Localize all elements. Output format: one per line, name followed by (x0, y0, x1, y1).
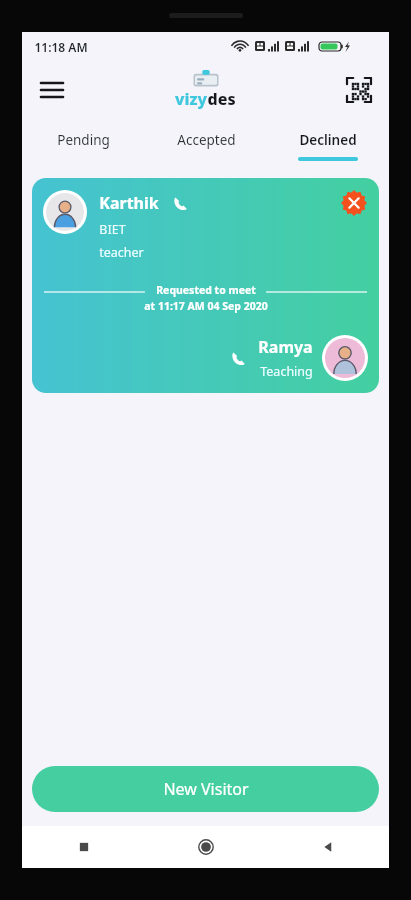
staticText: Declined (299, 131, 357, 149)
button[interactable]: Home (145, 826, 267, 868)
staticText: vizy (175, 88, 207, 110)
staticText: New Visitor (163, 778, 249, 800)
staticText: Requested to meet (156, 283, 256, 297)
staticText: at 11:17 AM 04 Sep 2020 (144, 299, 268, 313)
button[interactable]: Karthik (32, 178, 379, 393)
staticText: Teaching (260, 363, 313, 380)
button[interactable]: Declined (267, 118, 389, 162)
button[interactable]: Declined (341, 190, 367, 216)
staticText: 11:18 AM (34, 39, 88, 55)
button[interactable]: Pending (22, 118, 145, 162)
staticText: teacher (99, 244, 144, 261)
staticText: Pending (57, 131, 110, 149)
button[interactable]: Menu (30, 68, 74, 112)
staticText: des (207, 88, 236, 110)
staticText: Karthik (99, 192, 159, 214)
staticText: Accepted (177, 131, 236, 149)
button[interactable]: Scan QR code (337, 68, 381, 112)
button[interactable]: Recent apps (22, 826, 145, 868)
button[interactable]: Accepted (145, 118, 267, 162)
button[interactable]: Back (267, 826, 389, 868)
staticText: BIET (99, 221, 126, 238)
button[interactable]: New Visitor (32, 766, 379, 812)
staticText: Ramya (258, 336, 313, 358)
